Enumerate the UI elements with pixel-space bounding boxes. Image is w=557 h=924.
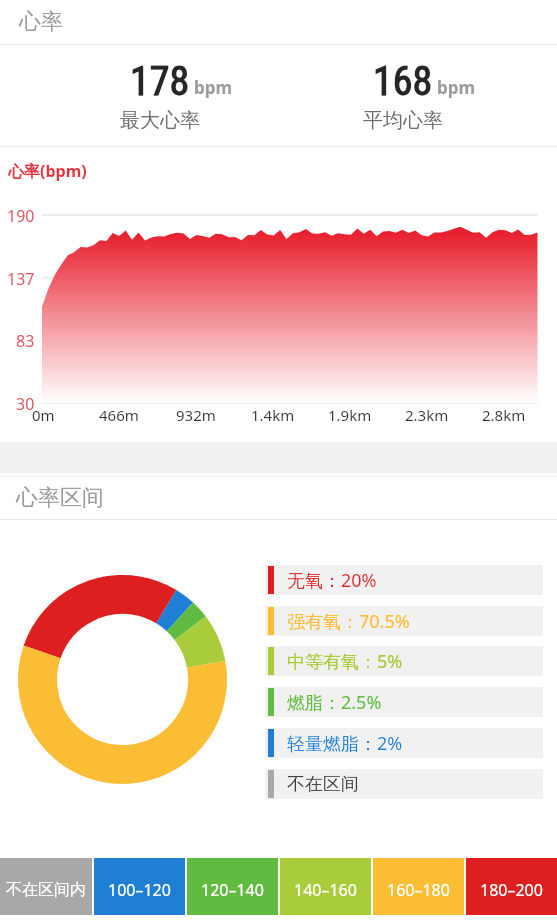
staticText: 466m — [99, 405, 139, 425]
staticText: 最大心率 — [120, 108, 200, 133]
button[interactable]: 强有氧：70.5% — [265, 606, 543, 636]
staticText: 178 — [130, 58, 190, 105]
staticText: 心率区间 — [16, 484, 104, 512]
button[interactable]: 燃脂：2.5% — [265, 687, 543, 717]
staticText: 1.4km — [251, 405, 295, 425]
staticText: 190 — [7, 205, 35, 227]
staticText: 137 — [7, 268, 35, 290]
staticText: 30 — [16, 393, 35, 415]
staticText: 不在区间 — [287, 773, 359, 796]
button[interactable]: 120–140 — [187, 858, 278, 915]
staticText: 160–180 — [387, 879, 450, 901]
staticText: 无氧：20% — [287, 568, 377, 593]
staticText: 120–140 — [201, 879, 264, 901]
staticText: 轻量燃脂：2% — [287, 731, 403, 756]
staticText: 心率(bpm) — [8, 160, 87, 182]
button[interactable]: 中等有氧：5% — [265, 646, 543, 676]
staticText: 83 — [16, 330, 35, 352]
staticText: 168 — [373, 58, 433, 105]
button[interactable]: 140–160 — [280, 858, 371, 915]
button[interactable]: 180–200 — [466, 858, 557, 915]
staticText: 强有氧：70.5% — [287, 609, 410, 634]
staticText: 0m — [32, 405, 55, 425]
button[interactable]: 轻量燃脂：2% — [265, 728, 543, 758]
button[interactable]: 100–120 — [94, 858, 185, 915]
staticText: 燃脂：2.5% — [287, 690, 382, 715]
staticText: 140–160 — [294, 879, 357, 901]
button[interactable]: 不在区间内 — [0, 858, 92, 915]
staticText: 180–200 — [480, 879, 543, 901]
staticText: 932m — [176, 405, 216, 425]
staticText: 100–120 — [108, 879, 171, 901]
staticText: bpm — [437, 76, 476, 99]
button[interactable]: 160–180 — [373, 858, 464, 915]
staticText: 平均心率 — [363, 108, 443, 133]
staticText: 2.3km — [405, 405, 449, 425]
button[interactable]: 无氧：20% — [265, 565, 543, 595]
staticText: bpm — [194, 76, 233, 99]
staticText: 心率 — [19, 8, 63, 36]
button[interactable]: 不在区间 — [265, 769, 543, 799]
staticText: 中等有氧：5% — [287, 649, 403, 674]
staticText: 1.9km — [328, 405, 372, 425]
staticText: 不在区间内 — [6, 880, 86, 900]
staticText: 2.8km — [482, 405, 526, 425]
